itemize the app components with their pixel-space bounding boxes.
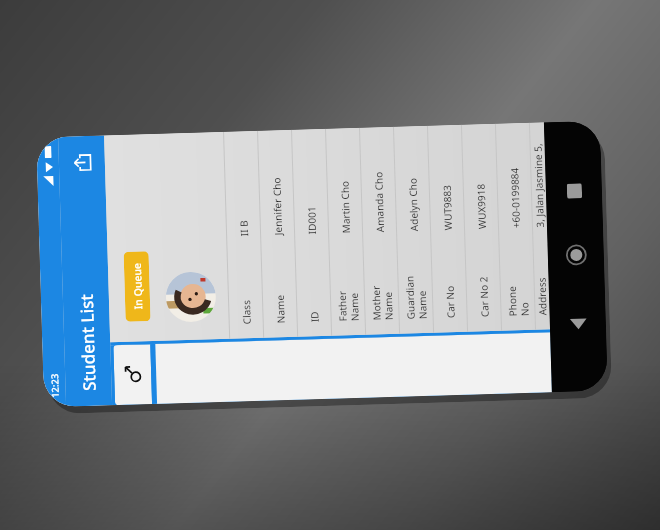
staticText: Mother Name xyxy=(369,285,396,321)
button[interactable]: Car No xyxy=(428,125,467,333)
button[interactable]: Home xyxy=(565,244,587,266)
staticText: Father Name xyxy=(335,290,362,322)
staticText: Adelyn Cho xyxy=(405,177,421,231)
button[interactable]: Address xyxy=(530,122,550,330)
button[interactable]: In Queue xyxy=(124,251,151,322)
staticText: Car No 2 xyxy=(476,276,492,317)
staticText: Class xyxy=(239,299,254,324)
staticText: Car No xyxy=(443,285,458,318)
staticText: Jennifer Cho xyxy=(269,177,285,235)
button[interactable]: Name xyxy=(258,130,297,338)
staticText: WUX9918 xyxy=(474,183,489,229)
staticText: +60-0199884 xyxy=(507,167,523,228)
staticText: In Queue xyxy=(130,262,145,310)
button[interactable]: Student photo xyxy=(165,271,217,323)
staticText: WUT9883 xyxy=(440,184,455,230)
button[interactable]: Phone No xyxy=(496,123,535,331)
staticText: Amanda Cho xyxy=(371,171,387,232)
button[interactable]: Recents xyxy=(567,183,582,199)
staticText: Student List xyxy=(75,294,101,391)
button[interactable]: Mother Name xyxy=(360,127,399,335)
staticText: II B xyxy=(237,220,251,236)
button[interactable]: Share xyxy=(65,147,98,179)
button[interactable]: Car No 2 xyxy=(462,124,501,332)
staticText: 3, Jalan Jasmine 5, Taman Jasmine, 43000… xyxy=(530,136,547,228)
staticText: ID001 xyxy=(304,206,319,234)
button[interactable]: Class xyxy=(224,131,263,339)
button[interactable]: Back xyxy=(569,312,588,332)
staticText: Martin Cho xyxy=(337,180,353,233)
staticText: ID xyxy=(307,311,322,322)
button[interactable]: Father Name xyxy=(326,128,365,336)
button[interactable]: ID xyxy=(292,129,331,337)
staticText: Phone No xyxy=(505,285,532,317)
button[interactable]: Guardian Name xyxy=(394,126,433,334)
staticText: Address xyxy=(534,277,550,316)
staticText: Name xyxy=(273,294,288,323)
button[interactable]: Male xyxy=(113,344,152,405)
staticText: 12:23 xyxy=(48,373,62,398)
staticText: Guardian Name xyxy=(402,275,430,320)
